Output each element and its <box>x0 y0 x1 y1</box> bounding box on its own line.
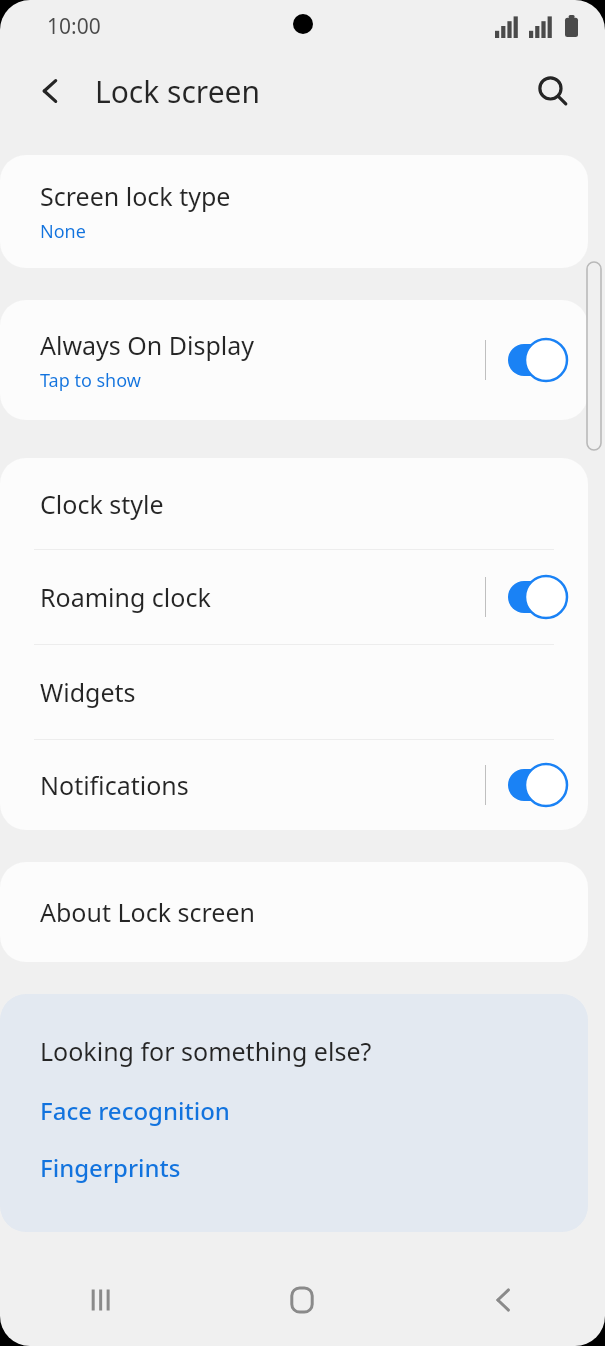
staticText: Widgets <box>40 675 136 709</box>
staticText: About Lock screen <box>40 895 255 929</box>
button[interactable]: Roaming clock <box>0 550 588 644</box>
staticText: None <box>40 219 86 244</box>
button[interactable]: Toggle <box>502 336 574 384</box>
button[interactable]: Recents <box>0 1254 201 1346</box>
staticText: Lock screen <box>95 71 261 112</box>
staticText: Roaming clock <box>40 580 211 614</box>
staticText: Tap to show <box>40 368 141 393</box>
staticText: Clock style <box>40 487 164 521</box>
button[interactable]: Face recognition <box>40 1094 230 1127</box>
button[interactable]: About Lock screen <box>0 862 588 962</box>
button[interactable]: Notifications <box>0 740 588 830</box>
staticText: Looking for something else? <box>40 1034 372 1068</box>
button[interactable]: Home <box>201 1254 403 1346</box>
staticText: Always On Display <box>40 328 255 362</box>
button[interactable]: Clock style <box>0 458 588 549</box>
button[interactable]: Screen lock type <box>0 155 588 268</box>
button[interactable]: Fingerprints <box>40 1151 181 1184</box>
staticText: Notifications <box>40 768 189 802</box>
button[interactable]: Search <box>527 65 579 117</box>
staticText: Fingerprints <box>40 1151 181 1184</box>
staticText: 10:00 <box>47 12 101 41</box>
button[interactable]: Back <box>403 1254 605 1346</box>
button[interactable]: Toggle <box>502 761 574 809</box>
button[interactable]: Toggle <box>502 573 574 621</box>
button[interactable]: Back <box>26 66 76 116</box>
button[interactable]: Widgets <box>0 645 588 739</box>
button[interactable]: Always On Display <box>0 300 588 420</box>
staticText: Face recognition <box>40 1094 230 1127</box>
staticText: Screen lock type <box>40 179 231 213</box>
